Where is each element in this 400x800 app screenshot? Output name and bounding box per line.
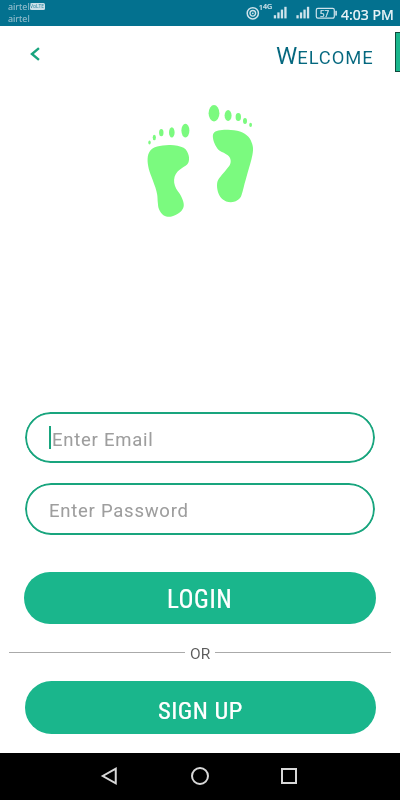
button[interactable]: SIGN UP	[25, 681, 376, 734]
button[interactable]: Enter Password	[25, 483, 375, 535]
staticText: Enter Email	[52, 429, 154, 451]
staticText: Enter Password	[49, 500, 189, 522]
button[interactable]: Back	[18, 37, 52, 71]
button[interactable]: LOGIN	[24, 572, 376, 624]
staticText: SIGN UP	[158, 696, 243, 725]
staticText: 57	[320, 8, 330, 19]
staticText: VoLTE	[30, 3, 45, 10]
button[interactable]: Recent apps	[272, 759, 306, 793]
button[interactable]: Enter Email	[25, 412, 375, 463]
staticText: 4G	[263, 2, 273, 12]
button[interactable]: Back	[93, 759, 127, 793]
staticText: 4:03 PM	[341, 5, 394, 24]
staticText: airtel	[8, 0, 30, 12]
staticText: LOGIN	[167, 585, 233, 614]
staticText: 1	[259, 3, 264, 13]
staticText: WELCOME	[276, 42, 374, 70]
button[interactable]: Home	[183, 759, 217, 793]
staticText: OR	[190, 645, 211, 663]
staticText: airtel	[8, 12, 30, 24]
